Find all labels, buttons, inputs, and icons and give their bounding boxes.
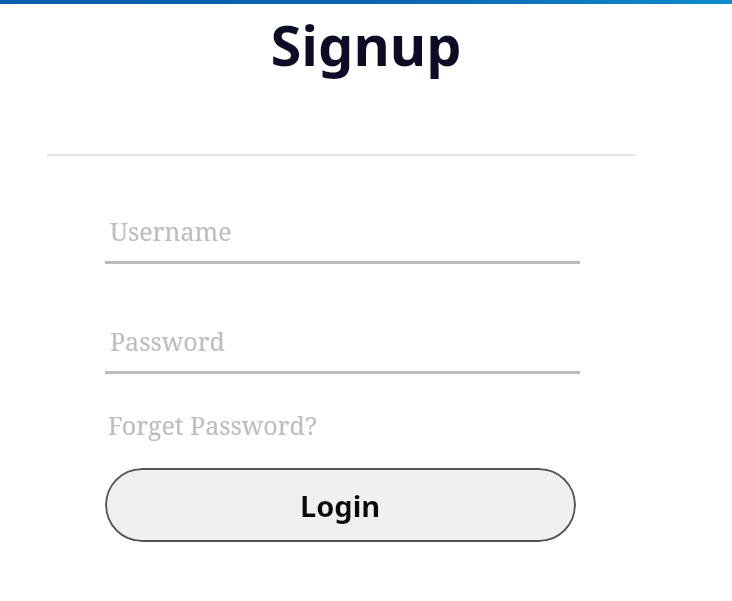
- button[interactable]: Username: [105, 214, 580, 264]
- button[interactable]: Forget Password?: [108, 408, 317, 442]
- staticText: Login: [300, 486, 381, 525]
- staticText: Password: [110, 324, 225, 358]
- staticText: Forget Password?: [108, 408, 317, 442]
- staticText: Username: [110, 214, 232, 248]
- button[interactable]: Login: [105, 468, 576, 542]
- staticText: Signup: [0, 6, 732, 82]
- button[interactable]: Password: [105, 324, 580, 374]
